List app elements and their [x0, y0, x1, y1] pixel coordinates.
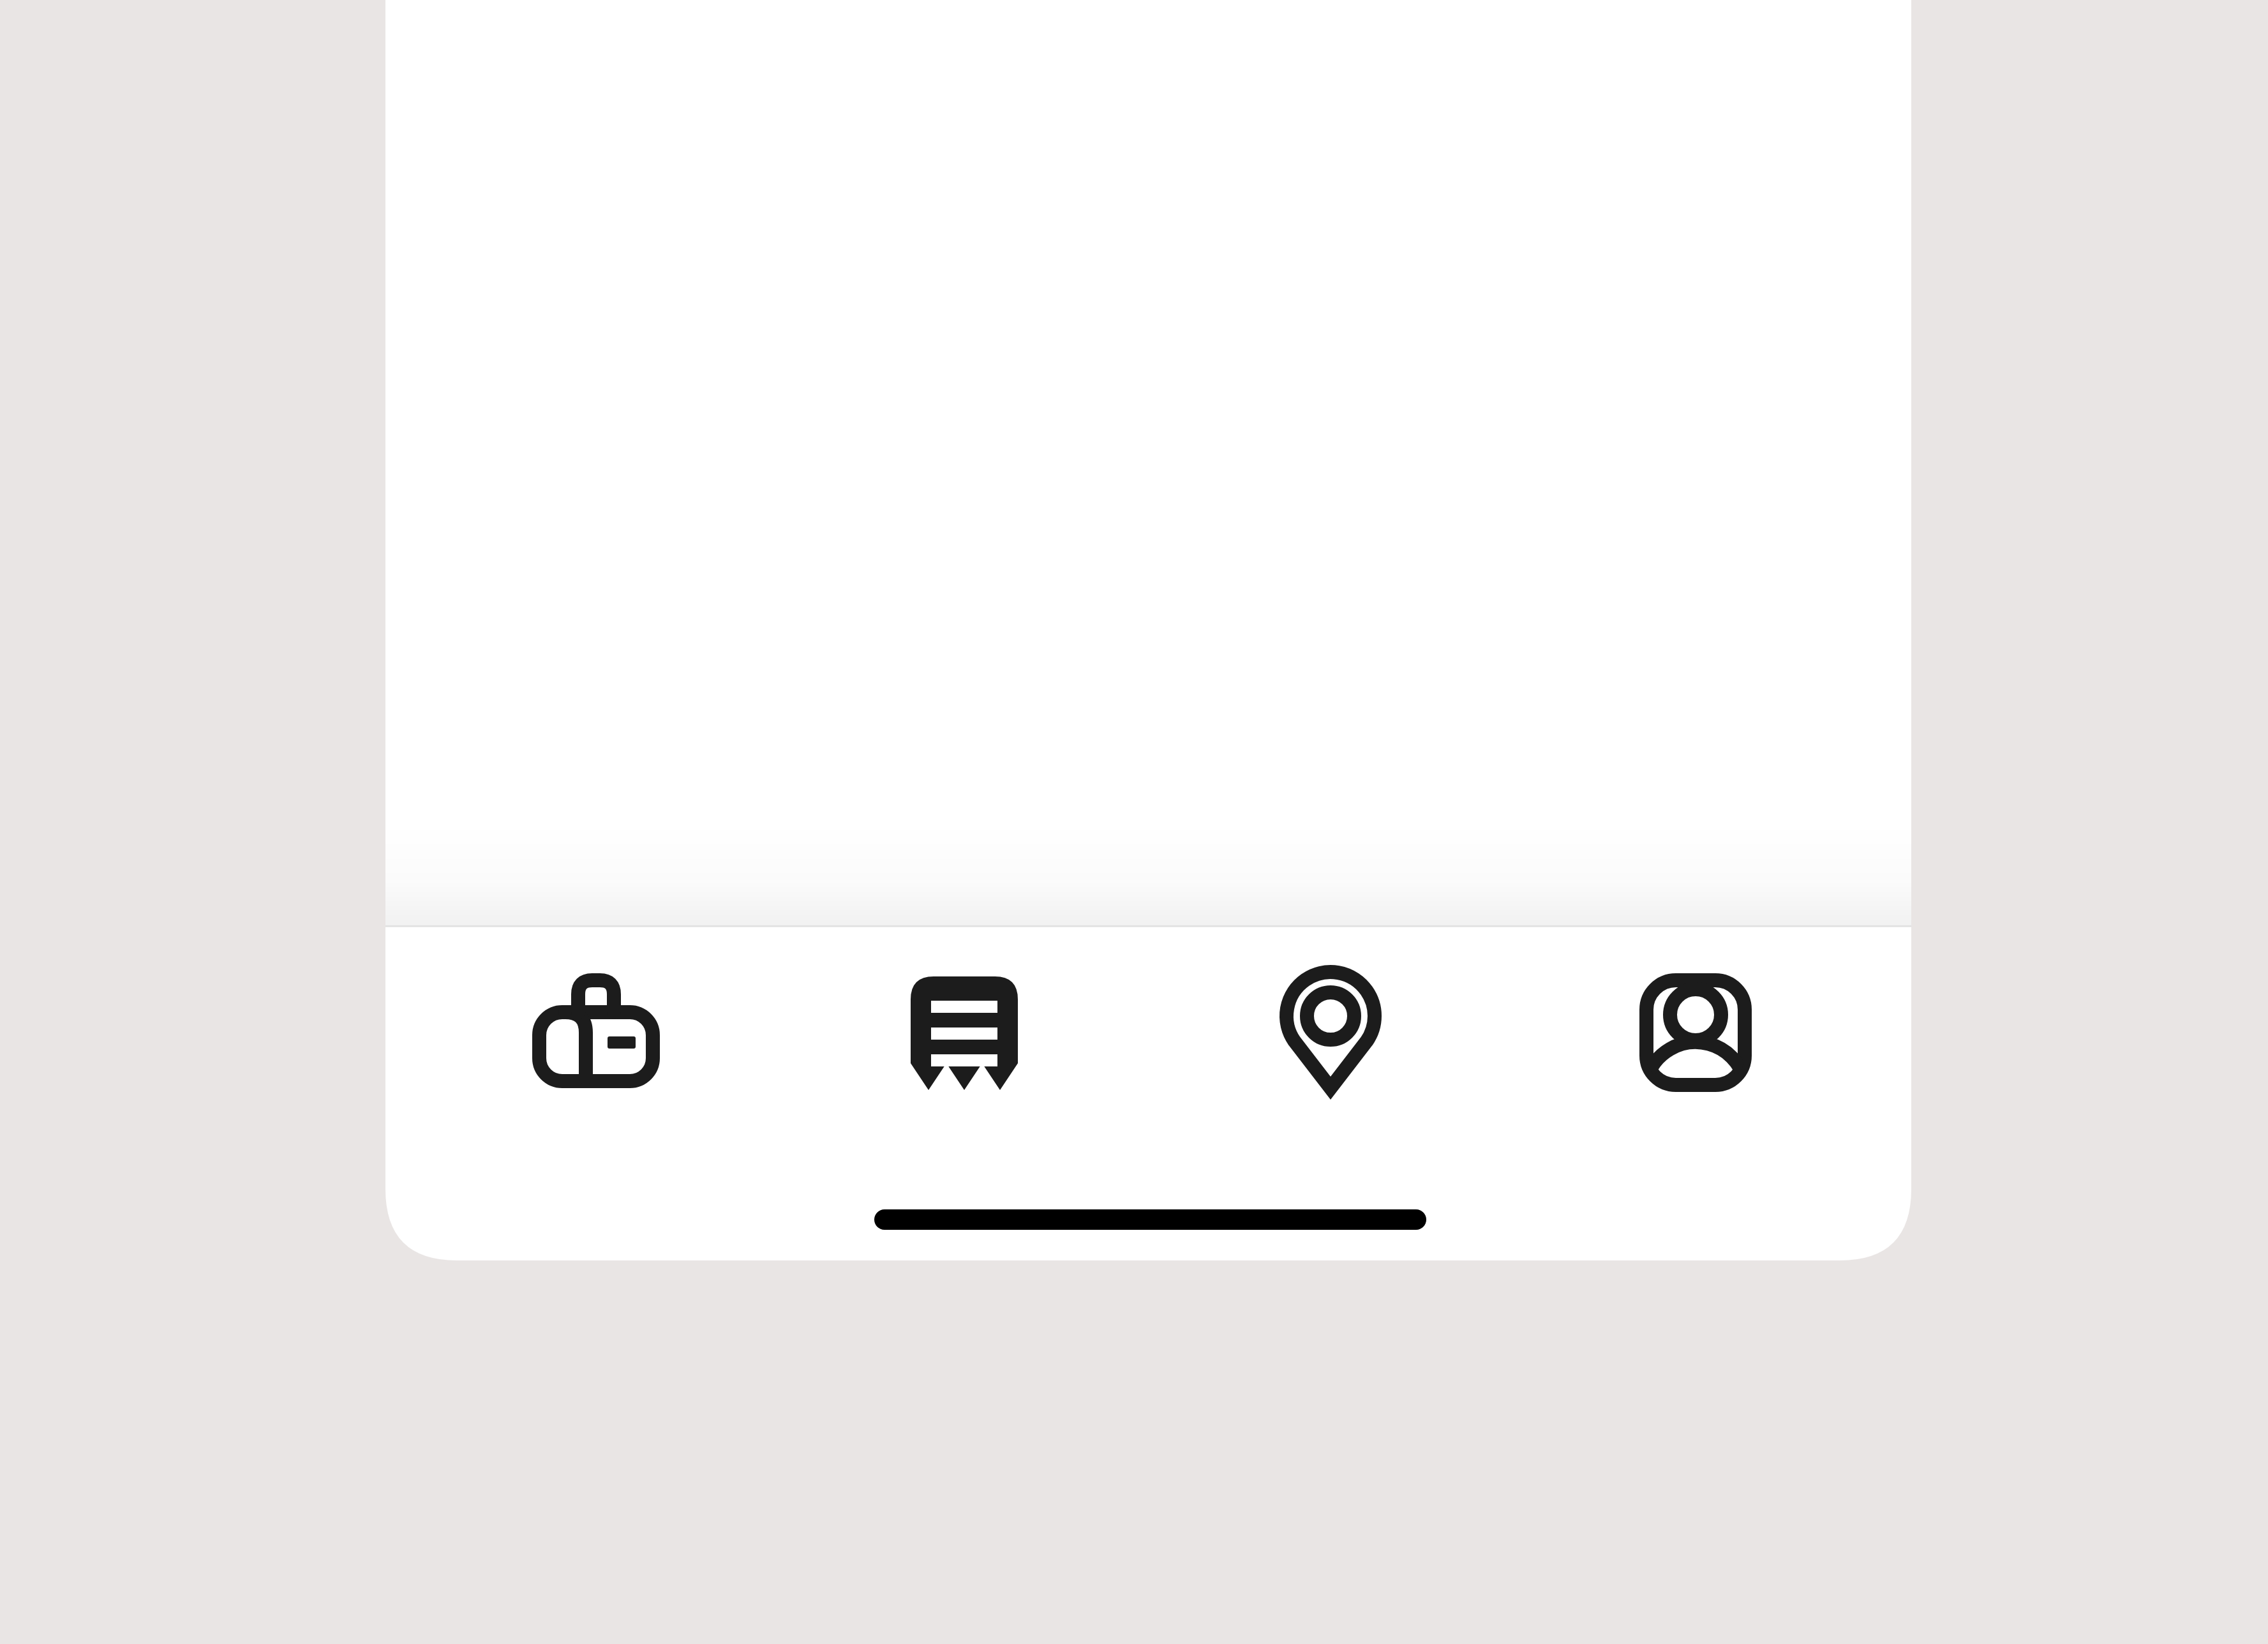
button[interactable]: Orders — [417, 939, 775, 1131]
button[interactable]: Locations — [1152, 939, 1509, 1131]
button[interactable]: Receipts — [786, 939, 1143, 1131]
button[interactable]: Profile — [1517, 939, 1874, 1131]
